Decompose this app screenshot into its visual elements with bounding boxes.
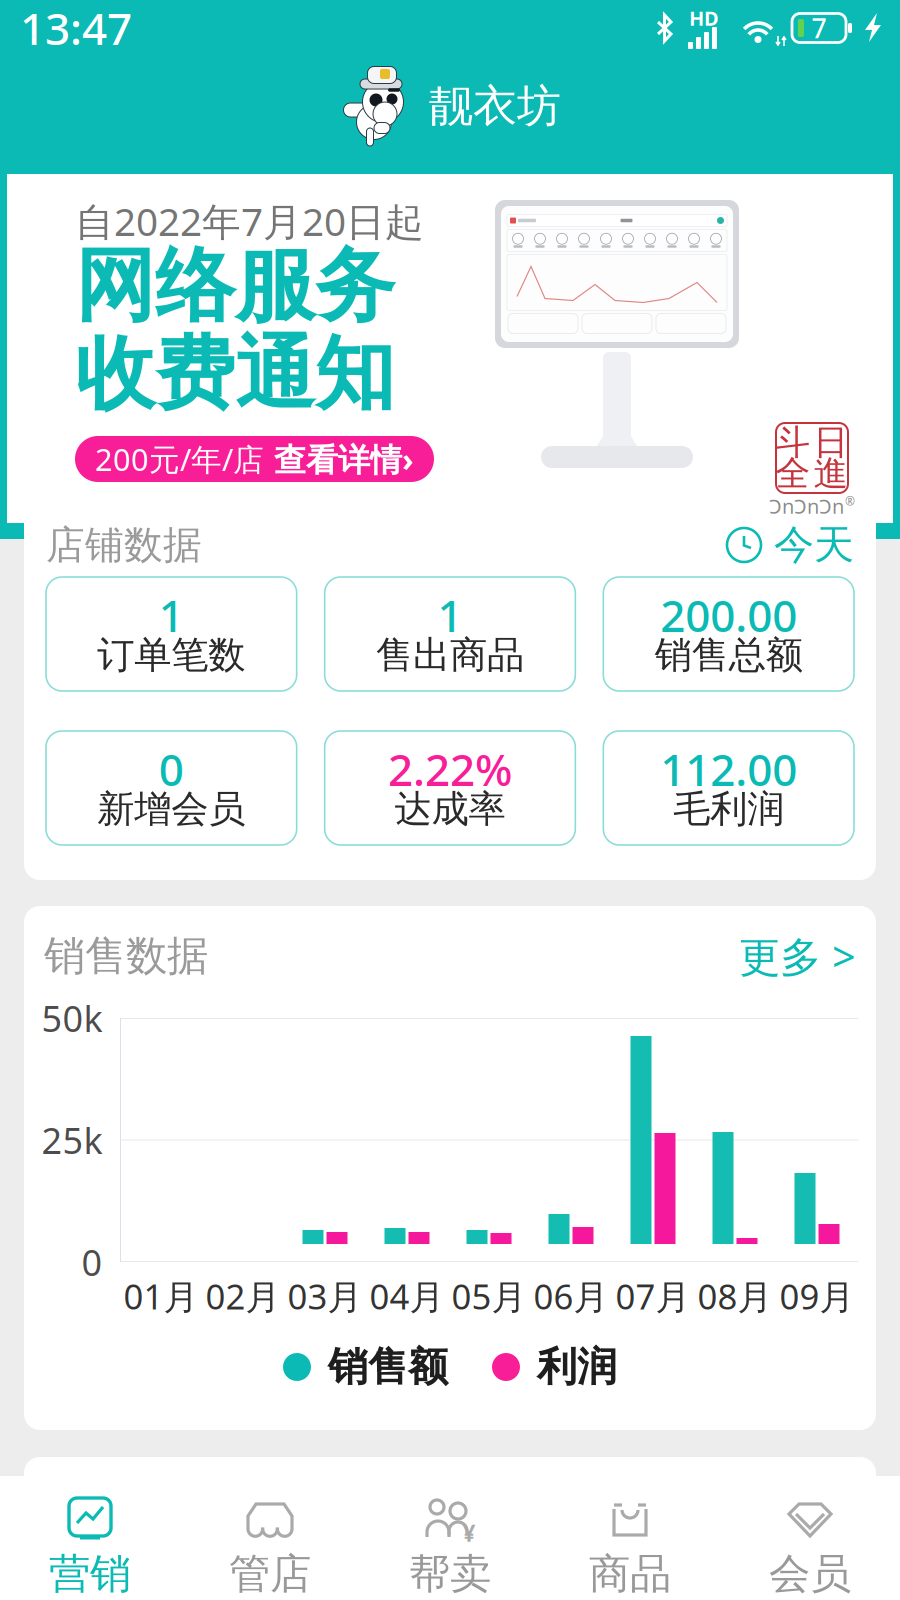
staticText: 09月 bbox=[779, 1273, 854, 1319]
staticText: 04月 bbox=[369, 1273, 444, 1319]
button[interactable]: 1 bbox=[46, 577, 297, 691]
staticText: 08月 bbox=[697, 1273, 772, 1319]
staticText: 商品 bbox=[589, 1549, 671, 1599]
button[interactable]: 1 bbox=[325, 577, 575, 691]
button[interactable]: 112.00 bbox=[603, 731, 854, 845]
staticText: 05月 bbox=[451, 1273, 526, 1319]
staticText: 25k bbox=[41, 1116, 102, 1164]
staticText: 帮卖 bbox=[409, 1549, 491, 1599]
staticText: 06月 bbox=[533, 1273, 608, 1319]
staticText: 01月 bbox=[123, 1273, 198, 1319]
staticText: 03月 bbox=[287, 1273, 362, 1319]
button[interactable]: 2.22% bbox=[325, 731, 575, 845]
staticText: 售出商品 bbox=[376, 632, 524, 678]
button[interactable]: 营销 bbox=[0, 1476, 180, 1600]
staticText: 日 bbox=[813, 421, 848, 464]
staticText: 新增会员 bbox=[97, 786, 245, 832]
staticText: 200.00 bbox=[660, 586, 797, 644]
staticText: 1 bbox=[437, 586, 462, 644]
staticText: 2.22% bbox=[388, 740, 512, 798]
staticText: 达成率 bbox=[394, 786, 505, 832]
staticText: 营销 bbox=[49, 1549, 131, 1599]
button[interactable]: 今天 bbox=[726, 525, 854, 565]
staticText: 销售数据 bbox=[44, 931, 208, 981]
button[interactable]: 更多 > bbox=[739, 929, 856, 983]
button[interactable]: 200.00 bbox=[603, 577, 854, 691]
staticText: 销售总额 bbox=[655, 632, 803, 678]
staticText: 店铺数据 bbox=[46, 521, 202, 569]
staticText: HD bbox=[689, 5, 719, 31]
button[interactable]: 自2022年7月20日起 bbox=[7, 174, 893, 523]
staticText: 02月 bbox=[205, 1273, 280, 1319]
button[interactable]: 管店 bbox=[180, 1476, 360, 1600]
staticText: 网络服务 bbox=[75, 237, 395, 335]
staticText: 7 bbox=[811, 10, 826, 46]
button[interactable]: 0 bbox=[46, 731, 297, 845]
staticText: ƆnƆnƆn bbox=[769, 493, 844, 519]
staticText: 13:47 bbox=[20, 0, 132, 57]
button[interactable]: ¥ bbox=[360, 1476, 540, 1600]
staticText: 毛利润 bbox=[673, 786, 784, 832]
staticText: 全 bbox=[775, 452, 810, 495]
staticText: 订单笔数 bbox=[97, 632, 245, 678]
staticText: 200元/年/店 bbox=[95, 439, 264, 479]
staticText: 今天 bbox=[774, 520, 854, 569]
staticText: 会员 bbox=[769, 1549, 851, 1599]
staticText: 斗 bbox=[775, 421, 810, 464]
staticText: 0 bbox=[81, 1238, 102, 1286]
staticText: 50k bbox=[41, 994, 102, 1042]
staticText: 利润 bbox=[537, 1342, 617, 1391]
button[interactable]: 商品 bbox=[540, 1476, 720, 1600]
staticText: 收费通知 bbox=[75, 325, 395, 423]
staticText: ¥ bbox=[462, 1518, 475, 1548]
staticText: 112.00 bbox=[660, 740, 797, 798]
staticText: 管店 bbox=[229, 1549, 311, 1599]
button[interactable]: 会员 bbox=[720, 1476, 900, 1600]
staticText: 進 bbox=[813, 452, 848, 495]
staticText: 0 bbox=[159, 740, 184, 798]
staticText: 1 bbox=[159, 586, 184, 644]
staticText: 自2022年7月20日起 bbox=[75, 195, 424, 247]
staticText: 销售额 bbox=[328, 1342, 448, 1391]
staticText: 靓衣坊 bbox=[429, 79, 561, 133]
staticText: 更多 > bbox=[739, 929, 856, 983]
staticText: ® bbox=[845, 493, 855, 509]
staticText: 查看详情› bbox=[274, 438, 414, 480]
staticText: 07月 bbox=[615, 1273, 690, 1319]
